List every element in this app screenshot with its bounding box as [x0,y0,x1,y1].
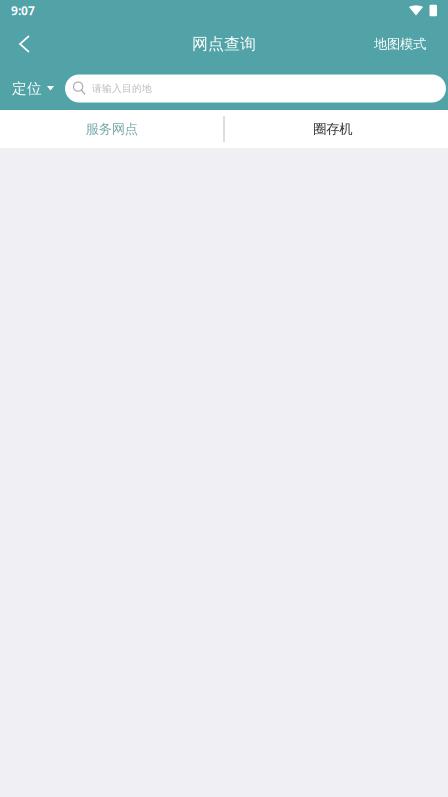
staticText: 9:07 [11,2,35,19]
button[interactable]: 服务网点 [0,110,223,148]
button[interactable]: 地图模式 [374,21,448,67]
button[interactable]: 定位 [0,67,65,110]
button[interactable]: 请输入目的地 [65,74,448,102]
staticText: 网点查询 [192,34,256,54]
button[interactable]: 圈存机 [224,110,448,148]
staticText: 圈存机 [313,121,352,137]
staticText: 地图模式 [374,36,426,52]
staticText: 请输入目的地 [92,82,152,95]
staticText: 定位 [12,79,42,97]
button[interactable]: 返回 [0,21,44,67]
staticText: 服务网点 [86,121,138,137]
